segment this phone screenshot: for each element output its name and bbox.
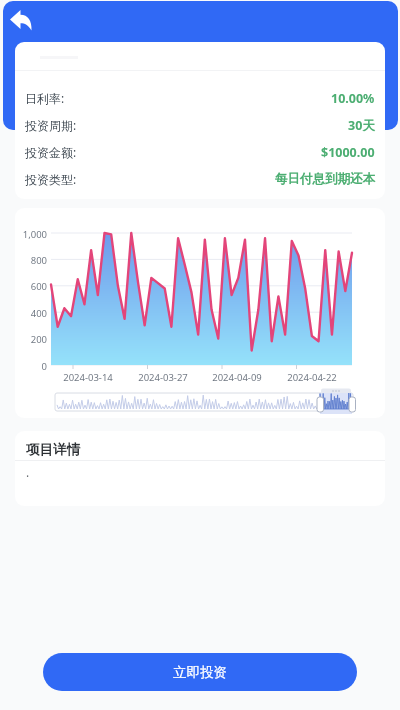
staticText: 立即投资 [173,664,227,681]
button[interactable]: 投资类型: [25,170,375,188]
button[interactable]: 日利率: [25,89,375,107]
button[interactable]: 投资金额: [25,143,375,161]
button[interactable]: 投资周期: [25,116,375,134]
staticText: 2024-04-09 [208,371,266,384]
staticText: 日利率: [25,90,65,106]
staticText: $1000.00 [321,144,375,161]
staticText: 2024-03-27 [134,371,192,384]
staticText: 每日付息到期还本 [275,171,375,187]
staticText: . [26,464,30,480]
staticText: 600 [15,280,47,293]
button[interactable] [6,5,36,35]
staticText: 1,000 [15,228,47,241]
staticText: 400 [15,307,47,320]
staticText: 200 [15,333,47,346]
staticText: 800 [15,254,47,267]
button[interactable]: 立即投资 [43,653,357,691]
staticText: 投资周期: [25,117,77,133]
staticText: 0 [15,360,47,373]
staticText: 2024-03-14 [59,371,117,384]
staticText: 10.00% [331,90,375,107]
staticText: 30天 [348,117,375,134]
staticText: 2024-04-22 [283,371,341,384]
staticText: 投资类型: [25,171,77,187]
staticText: 项目详情 [26,441,80,458]
staticText: 投资金额: [25,144,77,160]
